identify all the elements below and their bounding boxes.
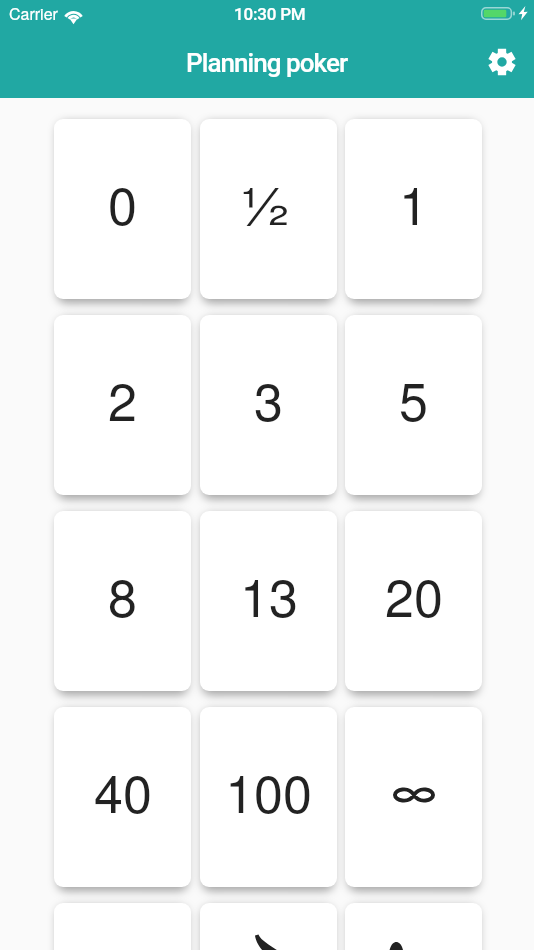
staticText: 3: [254, 361, 283, 435]
staticText: 13: [240, 557, 298, 631]
staticText: 0: [108, 165, 137, 239]
staticText: Planning poker: [186, 48, 348, 78]
button[interactable]: Settings: [479, 39, 525, 85]
button[interactable]: 100: [200, 707, 337, 887]
button[interactable]: 40: [54, 707, 191, 887]
staticText: 1: [399, 165, 428, 239]
staticText: 2: [108, 361, 137, 435]
staticText: 5: [399, 361, 428, 435]
button[interactable]: 1: [345, 119, 482, 299]
staticText: 20: [385, 557, 443, 631]
button[interactable]: 0: [54, 119, 191, 299]
staticText: 40: [94, 753, 152, 827]
button[interactable]: 20: [345, 511, 482, 691]
button[interactable]: 8: [54, 511, 191, 691]
staticText: ½: [238, 165, 292, 239]
button[interactable]: 5: [345, 315, 482, 495]
button[interactable]: 13: [200, 511, 337, 691]
button[interactable]: [345, 903, 482, 950]
button[interactable]: 3: [200, 315, 337, 495]
staticText: 8: [108, 557, 137, 631]
staticText: 100: [225, 753, 312, 827]
button[interactable]: ½: [200, 119, 337, 299]
staticText: 10:30 PM: [234, 4, 306, 24]
button[interactable]: [200, 903, 337, 950]
button[interactable]: 2: [54, 315, 191, 495]
button[interactable]: [345, 707, 482, 887]
staticText: Carrier: [9, 2, 58, 25]
